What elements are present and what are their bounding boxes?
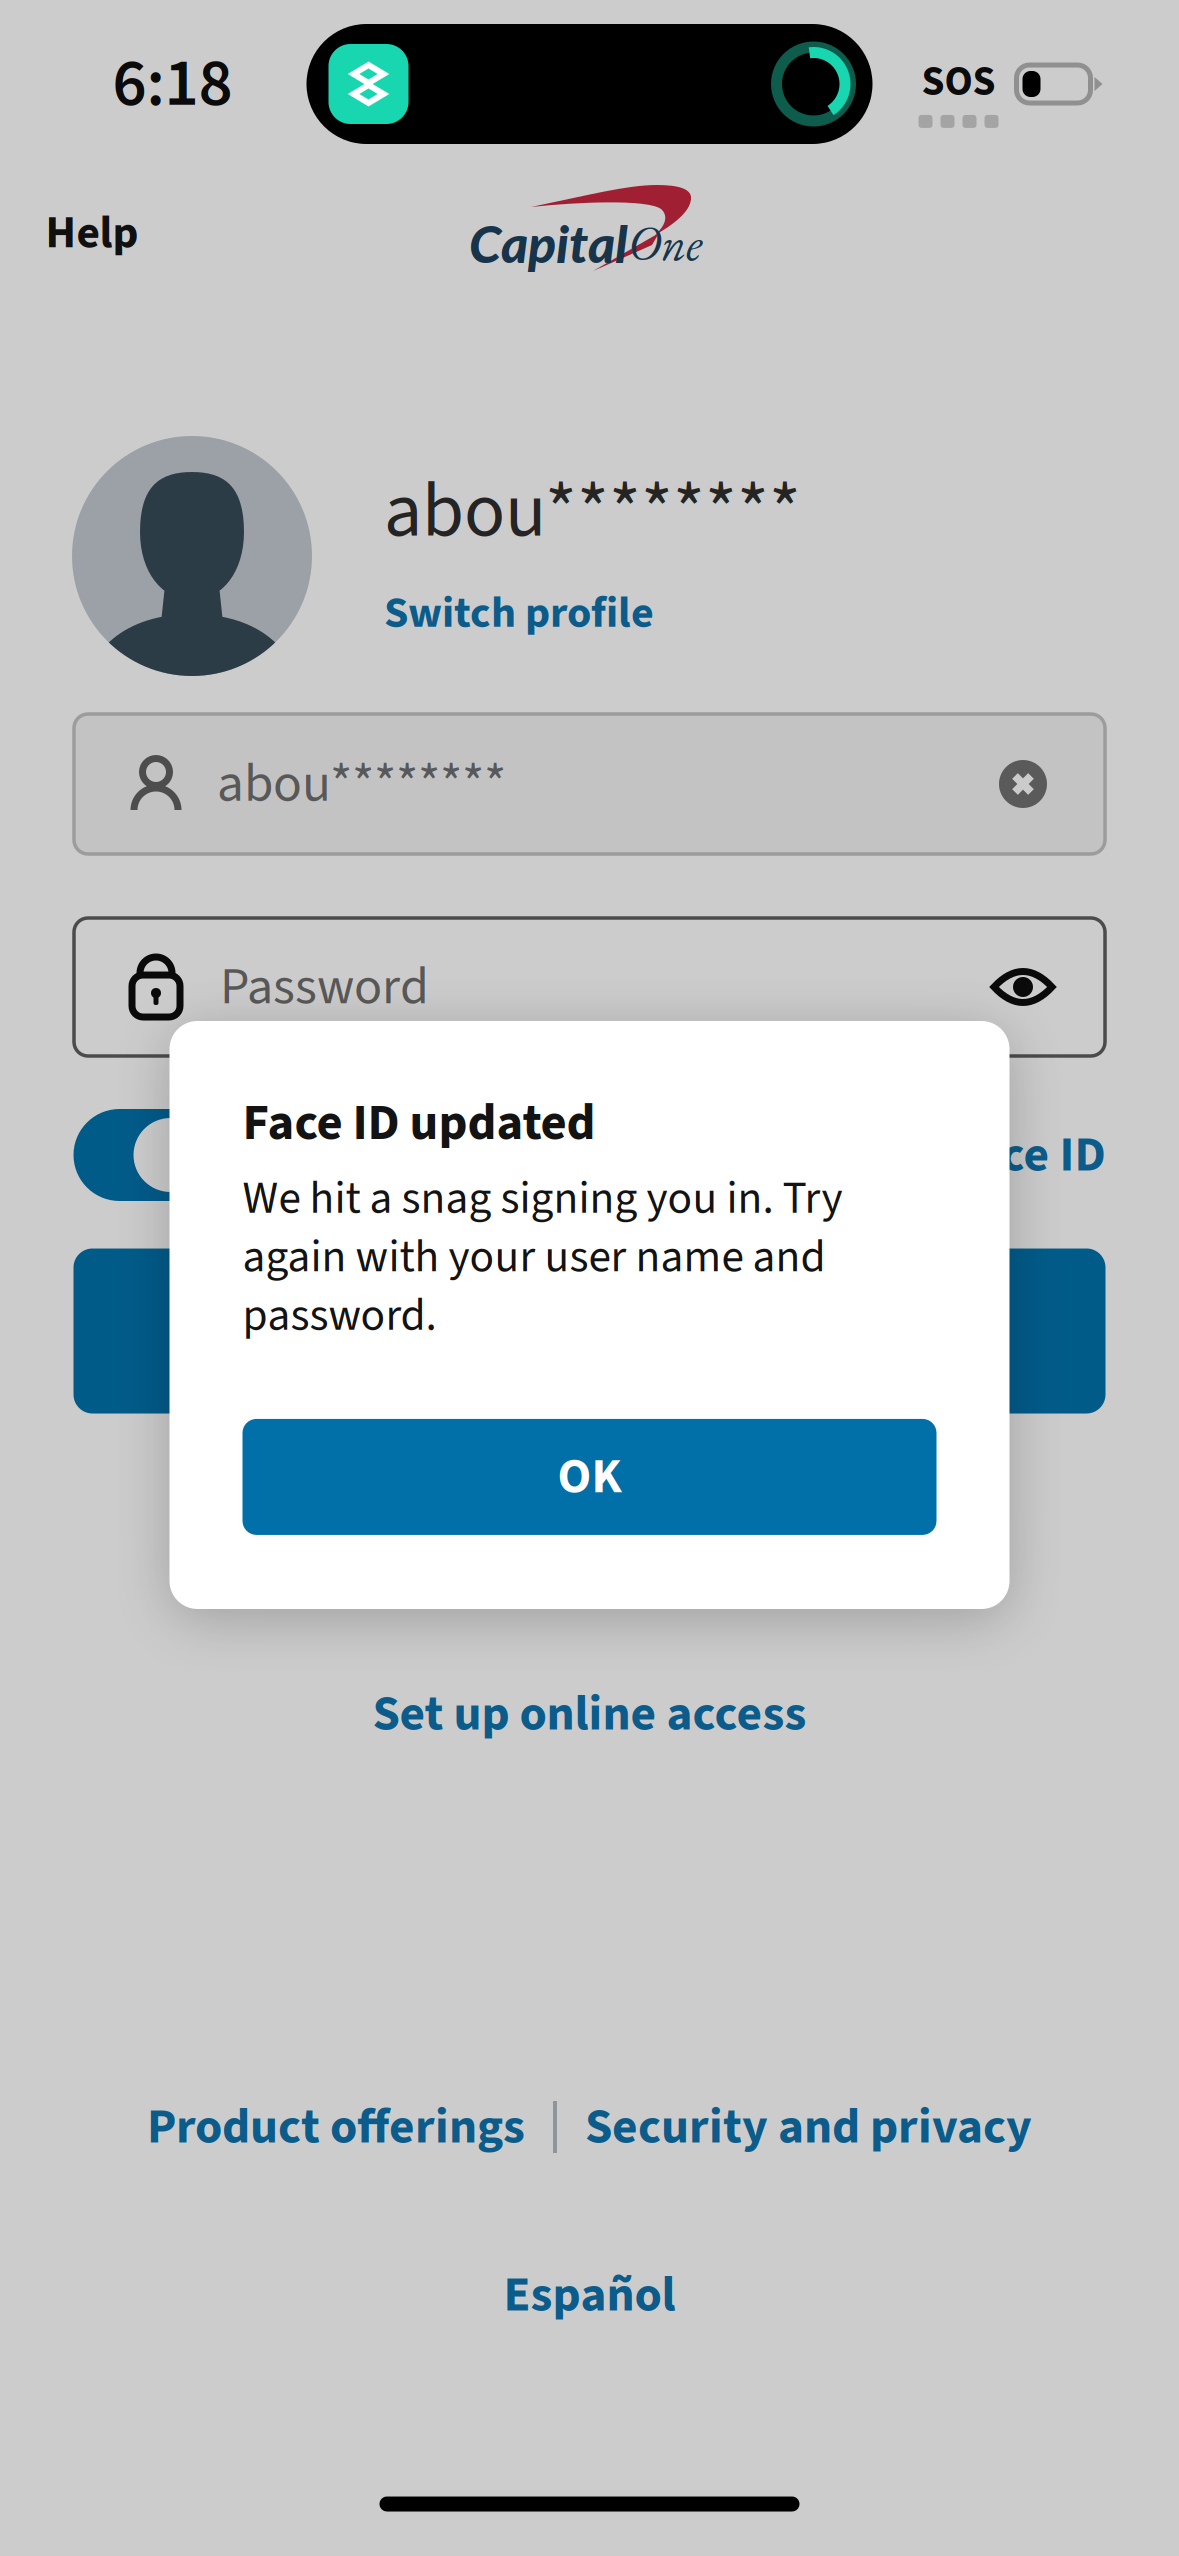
staticText: abou******** (217, 746, 506, 822)
staticText: Security and privacy (585, 2092, 1032, 2162)
button[interactable]: Security and privacy (585, 2076, 1032, 2178)
staticText: abou******** (384, 458, 801, 566)
button[interactable]: OK (242, 1419, 936, 1535)
button[interactable]: Español (487, 2242, 691, 2348)
staticText: OK (557, 1442, 621, 1512)
staticText: Face ID updated (242, 1087, 595, 1159)
staticText: Password (220, 950, 429, 1024)
staticText: Switch profile (384, 582, 654, 644)
staticText: Product offerings (147, 2092, 525, 2162)
staticText: One (628, 212, 702, 274)
button[interactable]: Product offerings (147, 2076, 525, 2178)
button[interactable]: Clear user name (999, 760, 1047, 808)
staticText: Face ID (951, 1120, 1105, 1190)
button[interactable]: Sign In (73, 1248, 1105, 1413)
button[interactable]: Help (25, 183, 158, 283)
staticText: 6:18 (112, 36, 232, 131)
button[interactable]: Show password (990, 965, 1056, 1009)
staticText: Help (45, 201, 138, 265)
button[interactable]: Face ID sign-in toggle, on (73, 1109, 216, 1201)
staticText: Set up online access (372, 1679, 806, 1749)
staticText: We hit a snag signing you in. Try again … (242, 1166, 842, 1348)
button[interactable]: Set up online access (356, 1661, 822, 1767)
staticText: Español (503, 2260, 675, 2330)
staticText: SOS (921, 52, 995, 111)
staticText: Capital (469, 212, 628, 274)
button[interactable]: Switch profile (384, 572, 654, 654)
